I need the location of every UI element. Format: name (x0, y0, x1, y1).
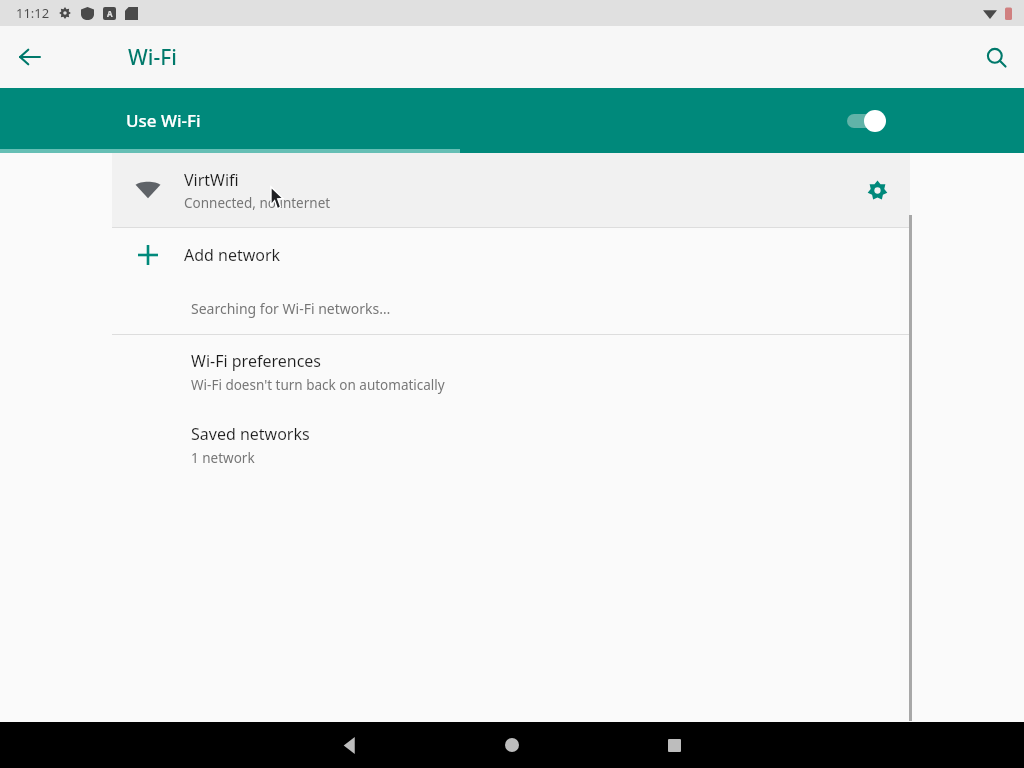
button[interactable]: Wi-Fi preferences (112, 335, 910, 408)
button[interactable]: Back (8, 35, 52, 79)
staticText: Saved networks (191, 423, 310, 445)
staticText: Wi-Fi doesn't turn back on automatically (191, 376, 445, 394)
staticText: 11:12 (16, 4, 50, 22)
staticText: A (107, 8, 113, 19)
button[interactable]: Search (974, 35, 1018, 79)
staticText: Searching for Wi-Fi networks… (191, 299, 391, 318)
staticText: Connected, no internet (184, 194, 331, 212)
button[interactable]: Saved networks (112, 408, 910, 481)
staticText: Wi-Fi preferences (191, 350, 322, 372)
button[interactable]: Add network (112, 228, 910, 282)
button[interactable]: Home (431, 722, 593, 768)
staticText: Add network (184, 244, 281, 266)
button[interactable]: Use Wi-Fi (0, 88, 1024, 153)
staticText: VirtWifi (184, 169, 239, 191)
button[interactable]: Network settings (844, 153, 910, 227)
staticText: 1 network (191, 449, 255, 467)
staticText: Wi-Fi (128, 43, 177, 72)
button[interactable]: Recent apps (593, 722, 755, 768)
button[interactable]: Back (269, 722, 431, 768)
staticText: Use Wi-Fi (126, 109, 201, 132)
button[interactable]: VirtWifi (112, 153, 910, 227)
